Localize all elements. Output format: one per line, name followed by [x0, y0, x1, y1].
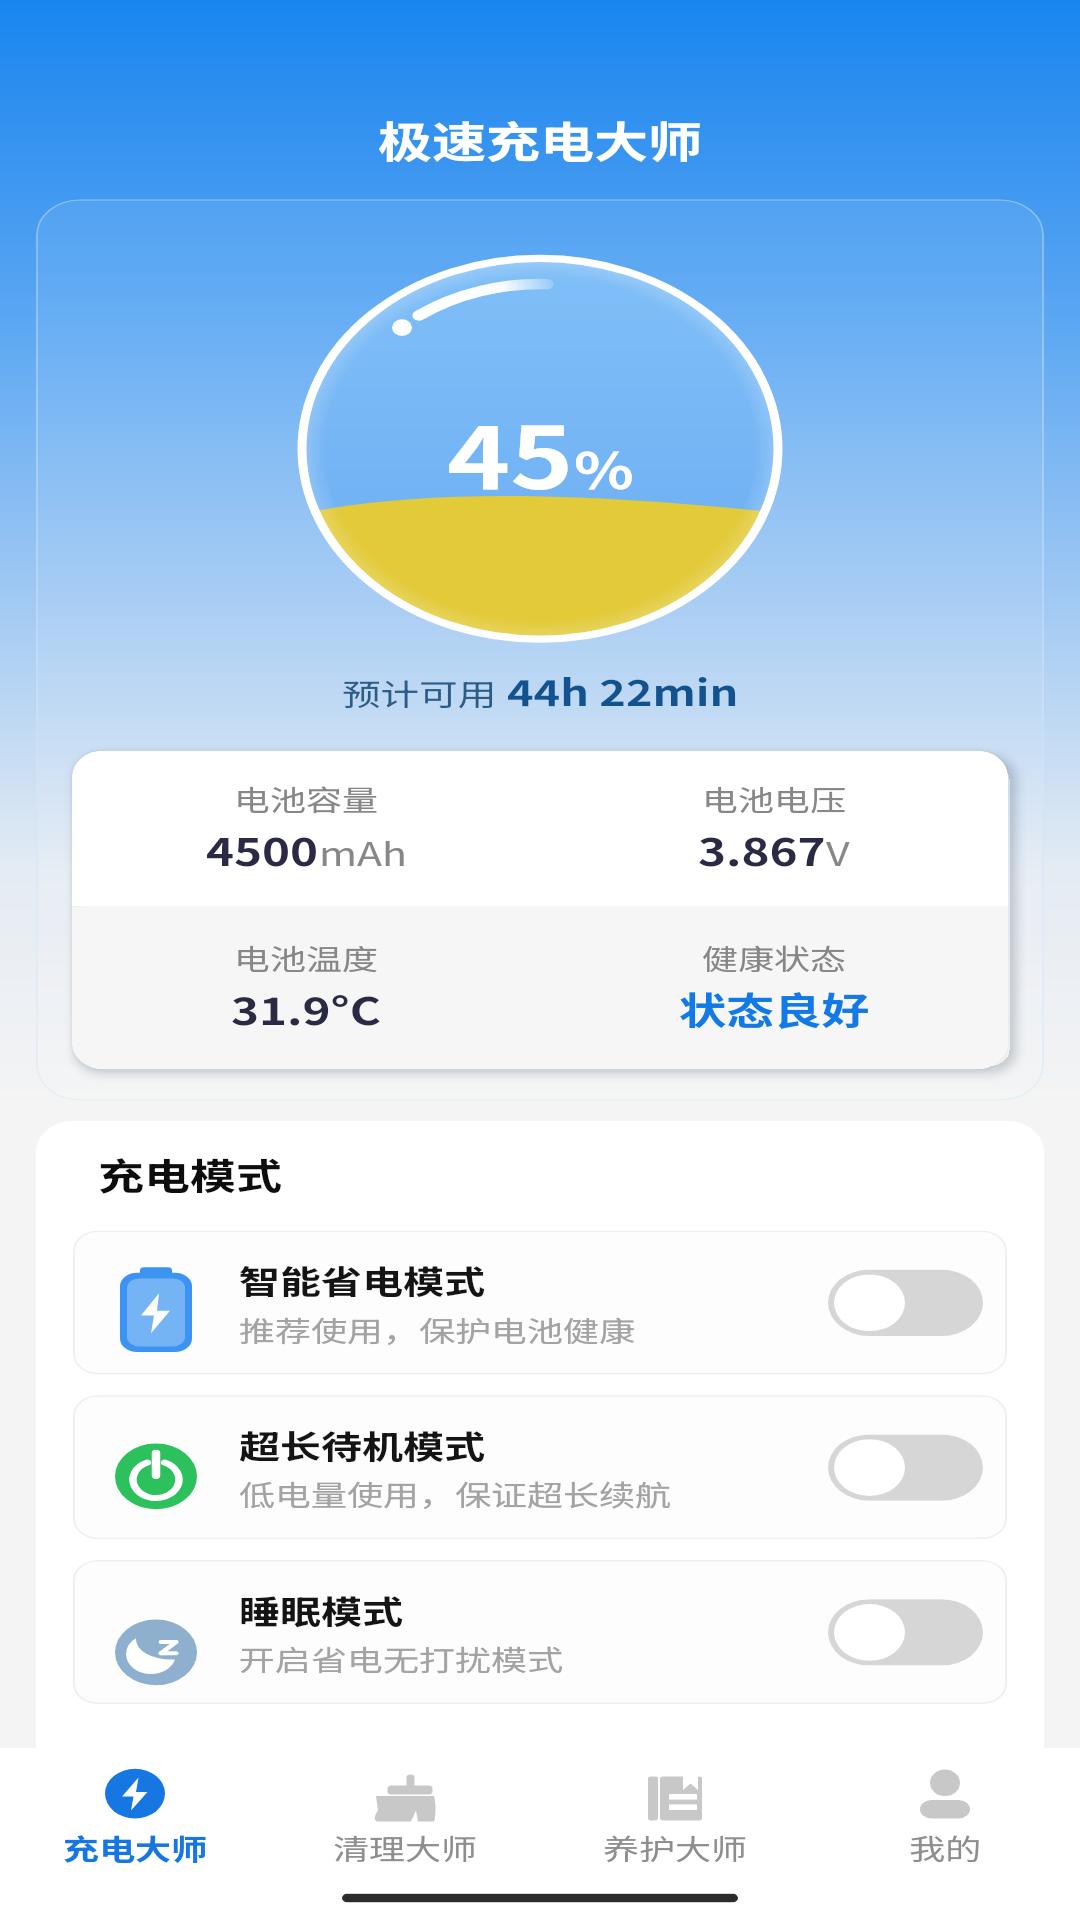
button[interactable]: 我的	[810, 1748, 1080, 1920]
staticText: 推荐使用，保护电池健康	[239, 1308, 636, 1350]
staticText: 睡眠模式	[239, 1586, 403, 1633]
button[interactable]: 睡眠模式	[73, 1560, 1007, 1704]
staticText: 清理大师	[333, 1826, 478, 1868]
staticText: 充电模式	[98, 1147, 282, 1201]
button[interactable]: Toggle 睡眠模式	[828, 1599, 983, 1666]
staticText: 开启省电无打扰模式	[239, 1638, 564, 1679]
staticText: 智能省电模式	[239, 1256, 485, 1303]
staticText: 电池电压	[702, 778, 847, 819]
staticText: 极速充电大师	[0, 108, 1080, 170]
staticText: 健康状态	[702, 937, 847, 978]
staticText: 3.867	[698, 822, 826, 877]
staticText: 电池容量	[234, 778, 379, 819]
button[interactable]: 智能省电模式	[73, 1230, 1007, 1374]
staticText: 45	[447, 390, 574, 514]
button[interactable]: 养护大师	[540, 1748, 810, 1920]
button[interactable]: 充电大师	[0, 1748, 270, 1920]
staticText: mAh	[319, 828, 407, 875]
staticText: 状态良好	[679, 981, 869, 1036]
staticText: 低电量使用，保证超长续航	[239, 1473, 672, 1514]
staticText: 我的	[909, 1826, 982, 1868]
staticText: 预计可用	[342, 670, 497, 715]
button[interactable]: Toggle 超长待机模式	[828, 1434, 983, 1501]
staticText: 电池温度	[234, 937, 379, 978]
staticText: 充电大师	[63, 1826, 208, 1868]
staticText: %	[574, 431, 634, 503]
staticText: 养护大师	[603, 1826, 748, 1868]
staticText: V	[826, 828, 850, 875]
staticText: 4500	[206, 822, 319, 877]
button[interactable]: 超长待机模式	[73, 1395, 1007, 1539]
button[interactable]: Toggle 智能省电模式	[828, 1270, 983, 1336]
button[interactable]: 清理大师	[270, 1748, 540, 1920]
staticText: 44h 22min	[497, 665, 739, 717]
staticText: 超长待机模式	[239, 1421, 485, 1468]
staticText: 31.9°C	[231, 981, 381, 1036]
